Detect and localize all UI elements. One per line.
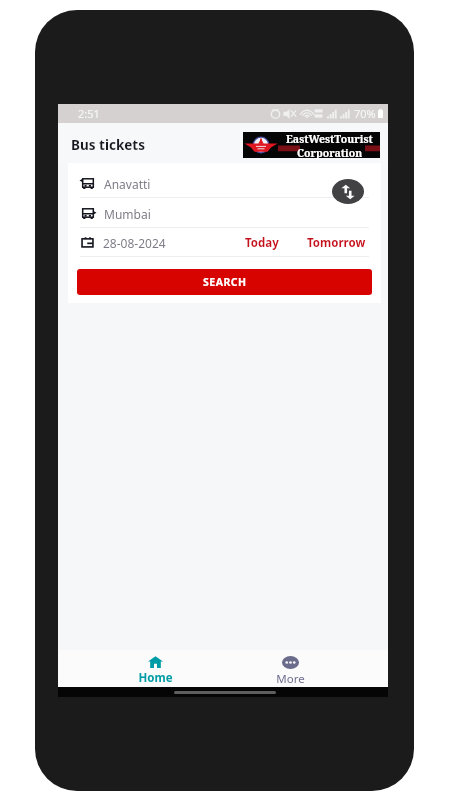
staticText: 70%	[354, 106, 376, 121]
staticText: Home	[138, 670, 173, 686]
button[interactable]: Anavatti	[68, 168, 381, 197]
button[interactable]: East West Tourist Corporation logo	[243, 132, 380, 158]
button[interactable]: More	[223, 650, 358, 687]
staticText: Anavatti	[104, 176, 151, 192]
staticText: 28-08-2024	[103, 235, 166, 251]
button[interactable]: Swap source and destination	[332, 179, 364, 204]
staticText: Corporation	[297, 146, 363, 158]
staticText: Bus tickets	[71, 136, 145, 154]
button[interactable]: SEARCH	[77, 269, 372, 295]
button[interactable]: Mumbai	[68, 198, 381, 227]
staticText: Tomorrow	[307, 235, 366, 251]
button[interactable]: Tomorrow	[304, 230, 369, 254]
staticText: Today	[245, 235, 279, 251]
button[interactable]: Today	[242, 230, 282, 254]
staticText: More	[276, 671, 305, 687]
button[interactable]: Home	[88, 650, 223, 687]
staticText: EastWestTourist	[286, 132, 373, 146]
staticText: Mumbai	[104, 206, 151, 222]
staticText: SEARCH	[203, 275, 247, 289]
staticText: 2:51	[78, 106, 100, 121]
